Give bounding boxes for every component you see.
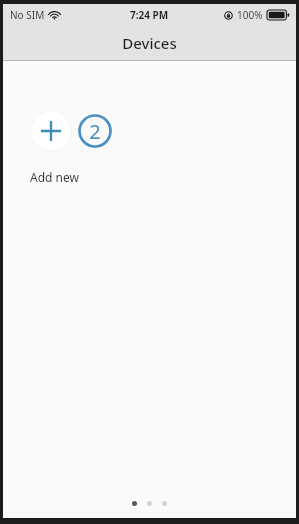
staticText: 7:24 PM (130, 8, 169, 22)
staticText: No SIM (10, 8, 45, 22)
button[interactable]: Add new device (30, 110, 121, 189)
staticText: 2 (89, 118, 101, 145)
staticText: Add new (30, 169, 79, 185)
staticText: 100% (237, 8, 263, 22)
staticText: Devices (122, 33, 177, 53)
